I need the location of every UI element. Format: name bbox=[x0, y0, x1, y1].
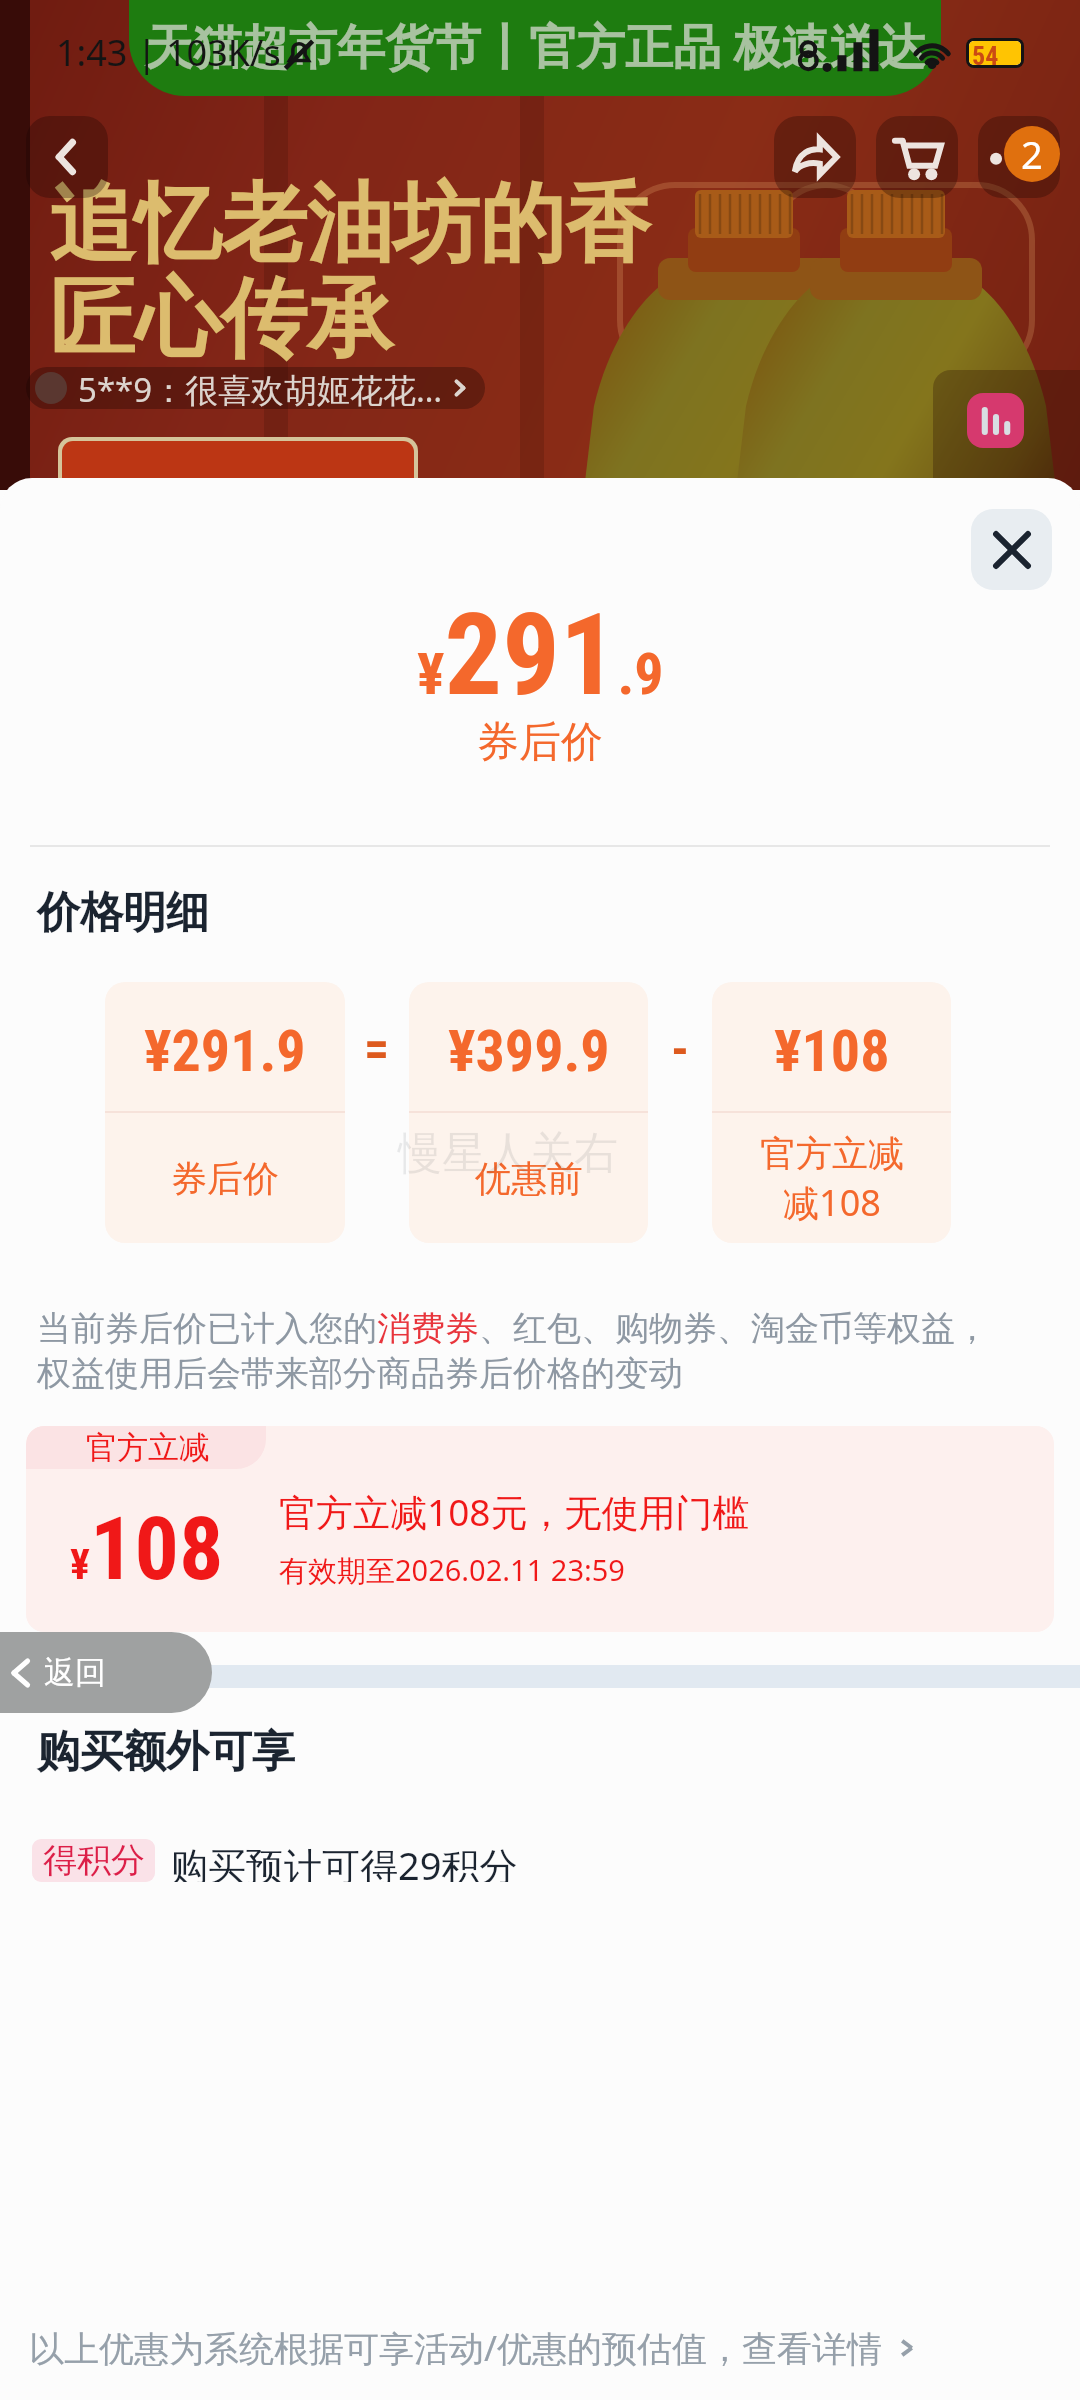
button[interactable]: 返回 bbox=[0, 1632, 212, 1713]
staticText: ¥291.9 bbox=[417, 588, 664, 722]
staticText: 优惠前 bbox=[475, 1156, 583, 1201]
staticText: ¥108 bbox=[70, 1497, 224, 1600]
staticText: 购买额外可享 bbox=[37, 1725, 295, 1779]
staticText: 1:43 | 103K/s bbox=[56, 28, 281, 77]
staticText: 价格明细 bbox=[37, 886, 209, 940]
staticText: 返回 bbox=[44, 1653, 106, 1692]
staticText: 以上优惠为系统根据可享活动/优惠的预估值，查看详情 bbox=[29, 2324, 883, 2372]
staticText: 官方立减 bbox=[86, 1428, 210, 1467]
staticText: 慢星人关右 bbox=[398, 1126, 618, 1181]
button[interactable]: Close bbox=[971, 509, 1052, 590]
staticText: 官方立减 减108 bbox=[760, 1131, 904, 1226]
staticText: 券后价 bbox=[171, 1156, 279, 1201]
staticText: ¥108 bbox=[774, 1017, 890, 1085]
staticText: 天猫超市年货节丨官方正品 极速送达 bbox=[145, 13, 926, 79]
button[interactable]: 5**9：很喜欢胡姬花花… bbox=[35, 367, 471, 409]
staticText: ¥291.9 bbox=[144, 1017, 306, 1085]
staticText: 官方立减108元，无使用门槛 bbox=[279, 1486, 750, 1537]
staticText: ¥399.9 bbox=[448, 1017, 610, 1085]
staticText: 2 bbox=[1021, 128, 1043, 180]
button[interactable]: Back bbox=[26, 116, 108, 198]
staticText: 当前券后价已计入您的消费券、红包、购物券、淘金币等权益，权益使用后会带来部分商品… bbox=[37, 1307, 997, 1395]
staticText: 有效期至2026.02.11 23:59 bbox=[279, 1550, 625, 1590]
staticText: 54 bbox=[972, 41, 999, 65]
button[interactable]: Cart bbox=[876, 116, 958, 198]
staticText: 得积分 bbox=[43, 1839, 145, 1882]
staticText: 5**9：很喜欢胡姬花花… bbox=[78, 367, 443, 409]
staticText: - bbox=[671, 1020, 690, 1079]
button[interactable]: 官方立减 bbox=[26, 1426, 1054, 1632]
button[interactable]: Share bbox=[774, 116, 856, 198]
staticText: 追忆老油坊的香 匠心传承 bbox=[49, 170, 651, 373]
button[interactable]: More bbox=[978, 116, 1060, 198]
staticText: = bbox=[364, 1020, 390, 1079]
staticText: 购买预计可得29积分 bbox=[170, 1839, 518, 1882]
staticText: 券后价 bbox=[0, 716, 1080, 769]
